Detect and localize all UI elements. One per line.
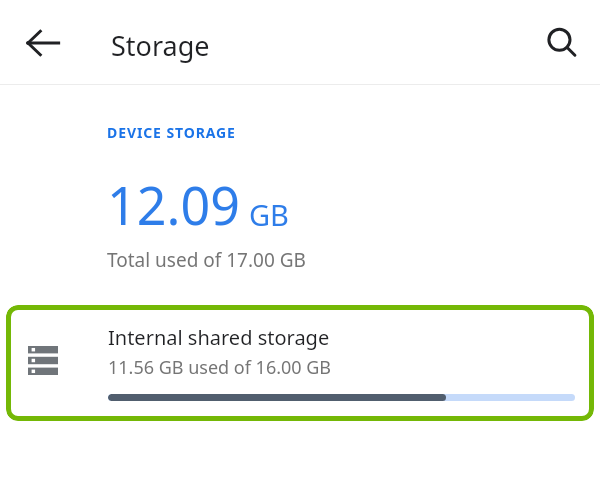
staticText: GB xyxy=(249,195,289,234)
button[interactable]: Back xyxy=(14,21,72,65)
staticText: 11.56 GB used of 16.00 GB xyxy=(108,355,332,380)
button[interactable]: Internal shared storage xyxy=(6,305,594,421)
staticText: Storage xyxy=(111,27,210,64)
staticText: 12.09 xyxy=(107,169,240,240)
staticText: Total used of 17.00 GB xyxy=(107,247,306,273)
staticText: DEVICE STORAGE xyxy=(107,123,236,142)
staticText: Internal shared storage xyxy=(108,324,330,351)
button[interactable]: Search xyxy=(538,20,586,66)
